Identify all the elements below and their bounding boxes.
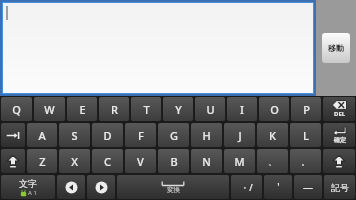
staticText: J (238, 128, 242, 143)
button[interactable]: Cursor right (87, 175, 115, 199)
staticText: ・/ (240, 181, 253, 193)
staticText: X (71, 154, 78, 169)
button[interactable]: I (227, 97, 257, 121)
button[interactable]: Shift (323, 149, 355, 173)
button[interactable]: T (131, 97, 161, 121)
staticText: L (303, 128, 309, 143)
staticText: A 1 (28, 189, 37, 197)
button[interactable] (3, 3, 313, 93)
staticText: 文字 (19, 178, 37, 189)
staticText: Q (12, 102, 21, 117)
button[interactable]: 移動 (323, 34, 349, 62)
staticText: K (269, 128, 276, 143)
button[interactable]: O (259, 97, 289, 121)
staticText: DEL (334, 110, 346, 118)
staticText: U (206, 102, 215, 117)
staticText: 、 (268, 156, 277, 167)
button[interactable]: P (291, 97, 321, 121)
staticText: R (111, 102, 118, 117)
staticText: B (170, 154, 178, 169)
staticText: T (143, 102, 150, 117)
button[interactable]: 、 (257, 149, 288, 173)
button[interactable]: Convert / space (117, 175, 229, 199)
staticText: 変換 (167, 186, 180, 194)
staticText: Y (175, 102, 182, 117)
button[interactable]: Shift (1, 149, 25, 173)
button[interactable]: B (158, 149, 189, 173)
button[interactable]: Tab (1, 123, 25, 147)
button[interactable]: L (290, 123, 321, 147)
button[interactable]: C (92, 149, 123, 173)
button[interactable]: — (294, 175, 322, 199)
staticText: E (79, 102, 86, 117)
button[interactable]: S (59, 123, 90, 147)
button[interactable]: Z (27, 149, 57, 173)
button[interactable]: Cursor left (57, 175, 85, 199)
staticText: O (270, 102, 279, 117)
button[interactable]: W (34, 97, 65, 121)
staticText: F (138, 128, 144, 143)
staticText: Z (39, 154, 46, 169)
staticText: M (234, 154, 245, 169)
button[interactable]: D (92, 123, 123, 147)
button[interactable]: M (224, 149, 255, 173)
staticText: G (170, 128, 178, 143)
button[interactable]: F (125, 123, 156, 147)
button[interactable]: Enter (323, 123, 355, 147)
staticText: P (303, 102, 310, 117)
button[interactable]: R (99, 97, 129, 121)
staticText: 記号 (331, 182, 349, 193)
staticText: C (104, 154, 111, 169)
staticText: 確定 (334, 136, 346, 144)
button[interactable]: N (191, 149, 222, 173)
button[interactable]: 記号 (324, 175, 355, 199)
button[interactable]: X (59, 149, 90, 173)
button[interactable]: U (195, 97, 225, 121)
button[interactable]: ・/ (231, 175, 262, 199)
staticText: 移動 (328, 43, 344, 53)
staticText: S (71, 128, 78, 143)
staticText: V (137, 154, 144, 169)
staticText: H (202, 128, 211, 143)
staticText: A (38, 128, 46, 143)
button[interactable]: E (67, 97, 97, 121)
button[interactable]: V (125, 149, 156, 173)
staticText: D (103, 128, 112, 143)
button[interactable]: K (257, 123, 288, 147)
button[interactable]: J (224, 123, 255, 147)
button[interactable]: Q (1, 97, 32, 121)
button[interactable]: A (27, 123, 57, 147)
staticText: W (44, 102, 55, 117)
staticText: 。 (301, 156, 310, 167)
staticText: N (202, 154, 211, 169)
staticText: ' (277, 180, 280, 194)
button[interactable]: Y (163, 97, 193, 121)
button[interactable]: 。 (290, 149, 321, 173)
button[interactable]: Switch input mode (1, 175, 55, 199)
button[interactable]: G (158, 123, 189, 147)
button[interactable]: Delete (323, 97, 355, 121)
button[interactable]: ' (264, 175, 292, 199)
staticText: I (240, 102, 244, 117)
staticText: — (303, 180, 313, 194)
button[interactable]: H (191, 123, 222, 147)
